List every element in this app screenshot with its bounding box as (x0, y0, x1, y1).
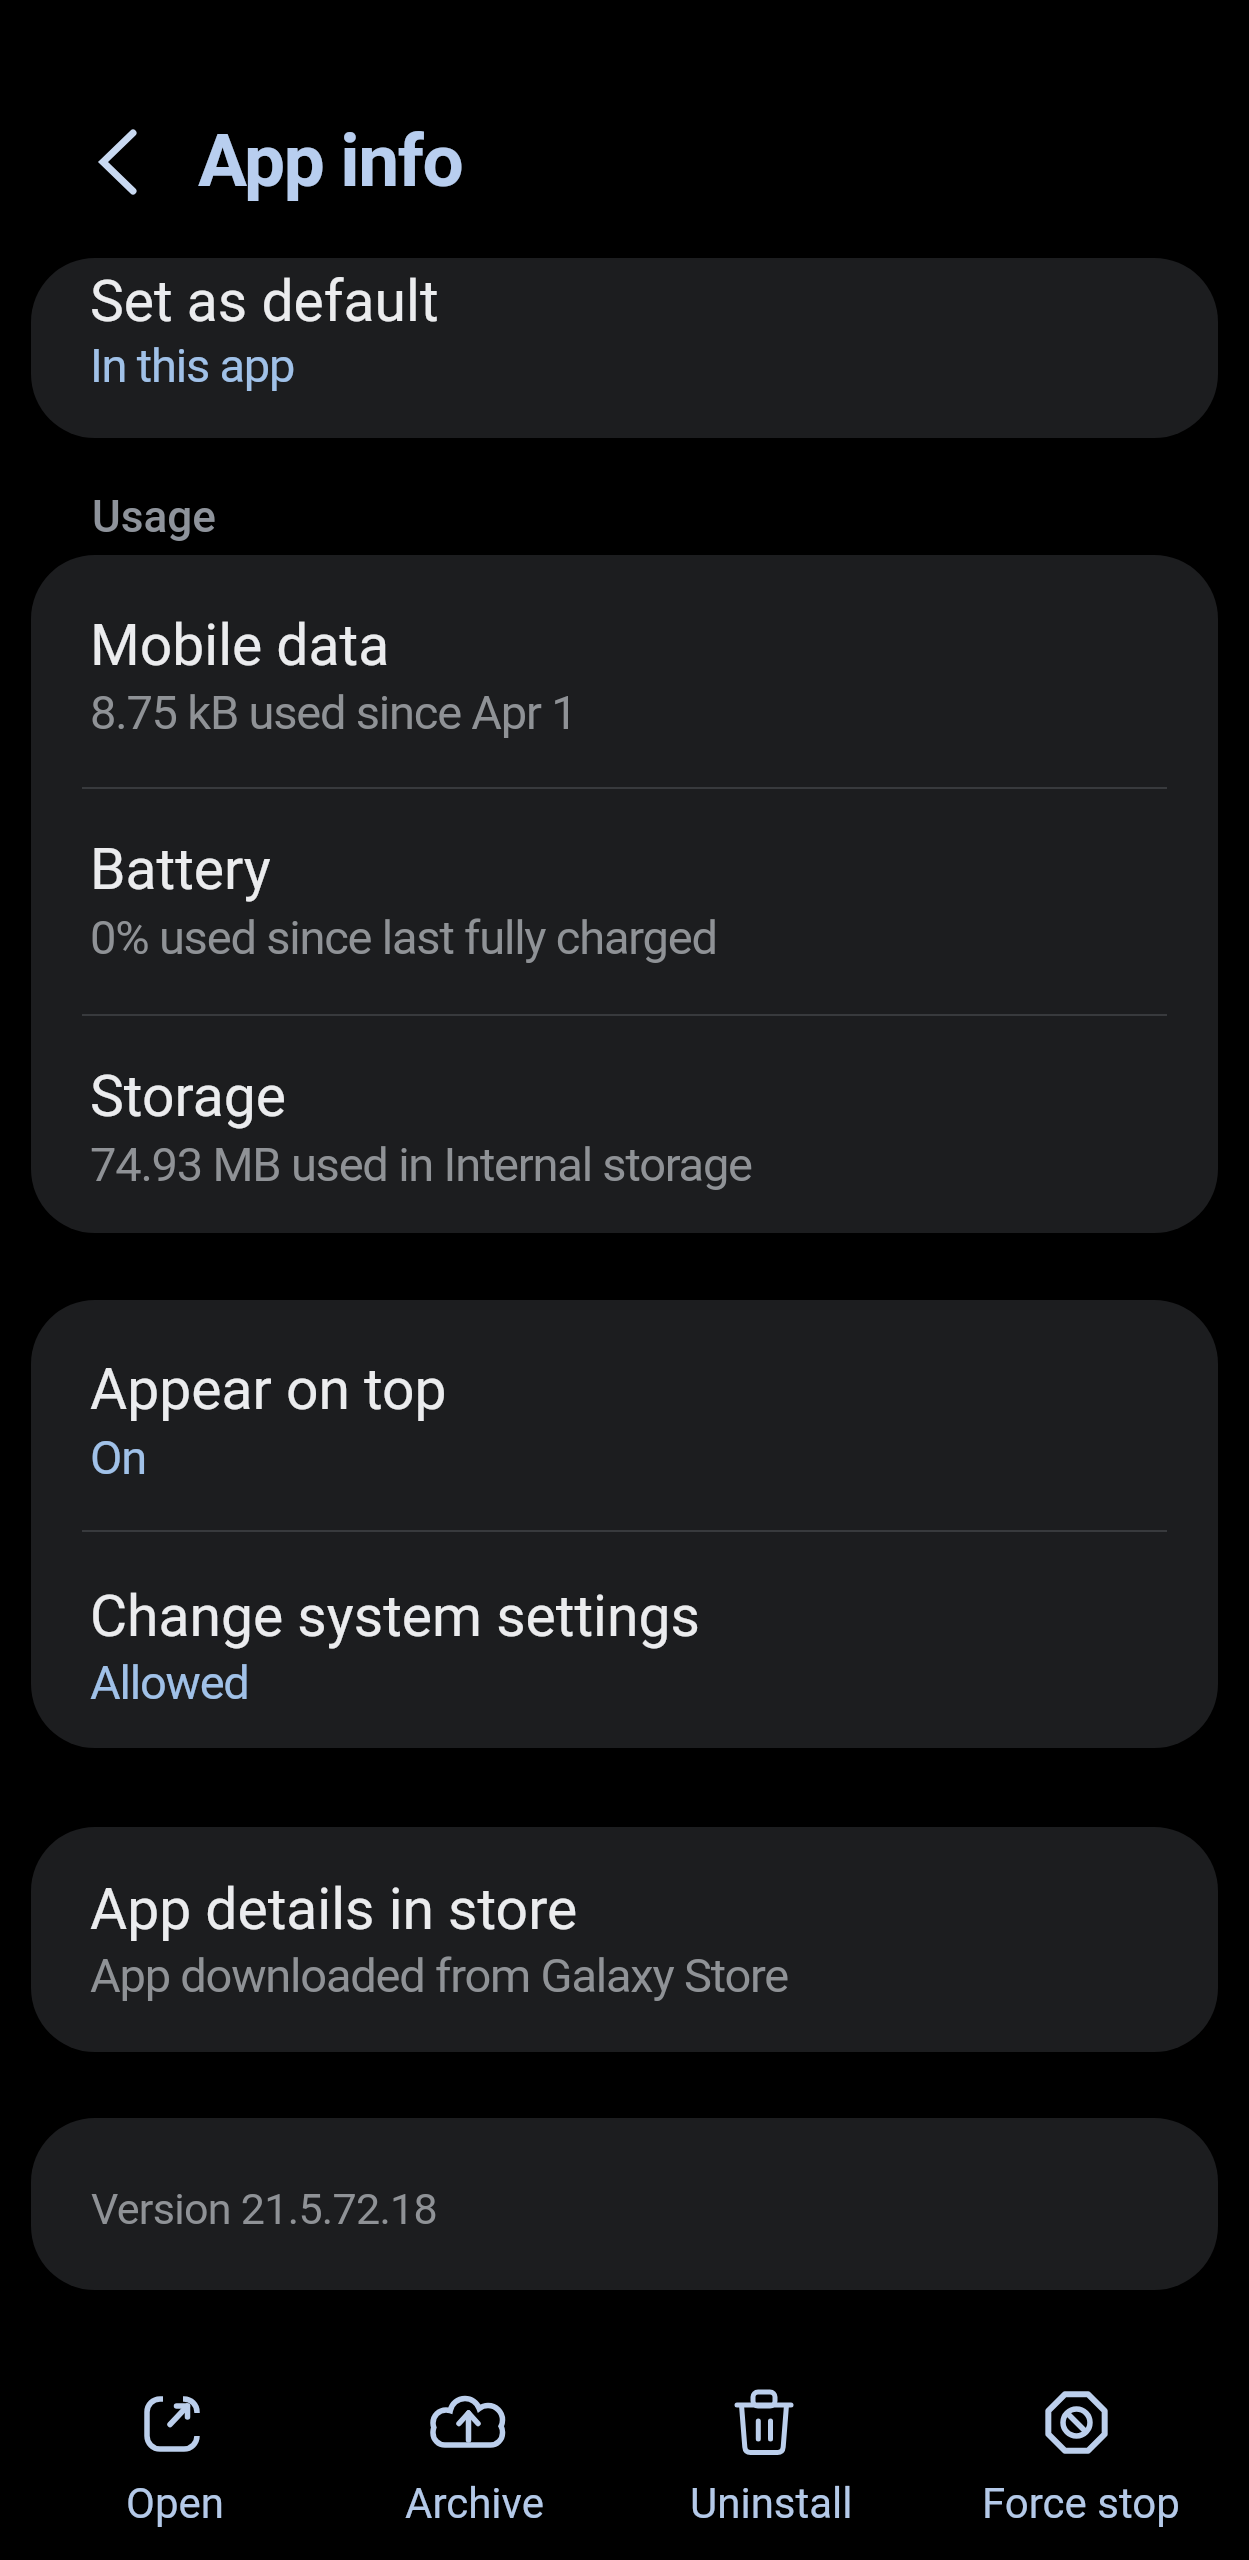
staticText: Usage (92, 491, 216, 543)
staticText: App details in store (90, 1876, 578, 1943)
staticText: Uninstall (690, 2479, 853, 2528)
button[interactable]: Mobile data (31, 555, 1218, 788)
staticText: Force stop (982, 2479, 1180, 2528)
staticText: 8.75 kB used since Apr 1 (90, 685, 577, 740)
staticText: Set as default (90, 268, 439, 335)
staticText: Archive (405, 2479, 544, 2528)
staticText: Battery (90, 836, 271, 903)
staticText: App downloaded from Galaxy Store (90, 1948, 788, 2003)
staticText: Appear on top (90, 1356, 447, 1423)
staticText: 74.93 MB used in Internal storage (90, 1137, 752, 1192)
button[interactable]: Appear on top (31, 1300, 1218, 1531)
staticText: Mobile data (90, 612, 390, 679)
button[interactable]: Uninstall (645, 2368, 885, 2548)
button[interactable]: App details in store (31, 1827, 1218, 2052)
button[interactable]: Archive (348, 2368, 588, 2548)
staticText: 0% used since last fully charged (90, 910, 717, 965)
staticText: Storage (90, 1063, 286, 1130)
button[interactable] (62, 112, 162, 212)
staticText: Version 21.5.72.18 (91, 2184, 437, 2234)
staticText: Open (126, 2479, 224, 2528)
button[interactable]: Set as default (31, 258, 1218, 438)
staticText: App info (198, 118, 463, 204)
staticText: Allowed (90, 1655, 249, 1710)
staticText: On (90, 1430, 146, 1485)
button[interactable]: Battery (31, 788, 1218, 1015)
button[interactable]: Force stop (956, 2368, 1196, 2548)
button[interactable]: Open (53, 2368, 293, 2548)
button[interactable]: Storage (31, 1015, 1218, 1233)
staticText: Change system settings (90, 1583, 700, 1650)
staticText: In this app (90, 338, 295, 393)
button[interactable]: Change system settings (31, 1531, 1218, 1748)
